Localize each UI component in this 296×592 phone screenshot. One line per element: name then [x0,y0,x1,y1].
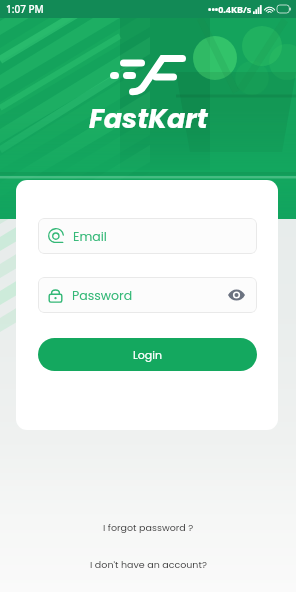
button[interactable]: Password [38,277,257,313]
staticText: Login [133,347,162,362]
button[interactable]: Email [38,218,257,254]
staticText: 1:07 PM [6,2,44,16]
staticText: FastKart [89,100,208,138]
staticText: Email [73,228,107,245]
button[interactable]: I don't have an account? [0,555,296,574]
button[interactable]: Show password [225,284,247,306]
staticText: I forgot password ? [103,521,194,534]
staticText: •••0.4KB/s [208,3,252,15]
staticText: Password [72,287,133,304]
button[interactable]: I forgot password ? [0,518,296,537]
staticText: I don't have an account? [90,558,207,571]
button[interactable]: Login [38,338,257,371]
